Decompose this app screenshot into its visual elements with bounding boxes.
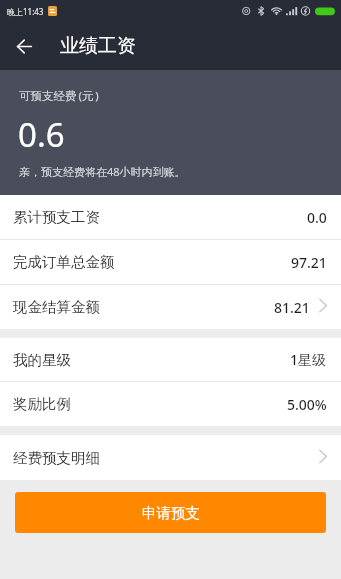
staticText: 0.6 — [18, 112, 65, 157]
staticText: 现金结算金额 — [13, 298, 100, 316]
staticText: 申请预支 — [142, 504, 200, 522]
button[interactable]: 经费预支明细 — [0, 435, 341, 480]
button[interactable]: 完成订单总金额 — [0, 240, 341, 285]
button[interactable]: 我的星级 — [0, 338, 341, 382]
staticText: 业绩工资 — [60, 34, 136, 58]
staticText: 1星级 — [290, 350, 327, 369]
staticText: 完成订单总金额 — [13, 253, 115, 271]
staticText: 晚上11:43 — [7, 6, 44, 17]
staticText: 经费预支明细 — [13, 449, 100, 467]
staticText: 5.00% — [287, 395, 327, 414]
button[interactable]: 累计预支工资 — [0, 195, 341, 240]
button[interactable]: 申请预支 — [15, 492, 326, 533]
staticText: 81.21 — [274, 298, 310, 317]
staticText: 0.0 — [307, 208, 327, 227]
staticText: 累计预支工资 — [13, 208, 100, 226]
button[interactable]: Back — [0, 22, 48, 70]
staticText: 97.21 — [291, 253, 327, 272]
staticText: 奖励比例 — [13, 395, 71, 413]
staticText: 可预支经费 (元 ) — [19, 88, 99, 104]
staticText: 亲，预支经费将在48小时内到账。 — [19, 164, 186, 179]
button[interactable]: 奖励比例 — [0, 382, 341, 426]
button[interactable]: 现金结算金额 — [0, 285, 341, 329]
staticText: 我的星级 — [13, 351, 71, 369]
